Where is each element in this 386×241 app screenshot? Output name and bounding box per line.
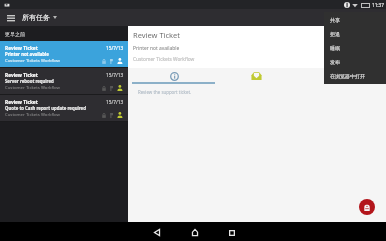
staticText: Review Ticket	[5, 45, 38, 52]
staticText: Customer Tickets Workflow	[5, 57, 60, 63]
button[interactable]: Details	[128, 68, 220, 84]
button[interactable]: Messages	[220, 68, 293, 84]
staticText: Printer not available	[5, 51, 49, 57]
staticText: Review the support ticket.	[138, 89, 192, 95]
staticText: 所有任务	[22, 13, 50, 22]
button[interactable]: Open navigation drawer	[0, 9, 22, 26]
button[interactable]: Back	[137, 222, 176, 241]
staticText: Review Ticket	[5, 72, 38, 79]
staticText: Server reboot required	[5, 78, 54, 84]
button[interactable]: New task	[359, 199, 375, 215]
staticText: 11:37	[372, 2, 384, 8]
button[interactable]: Review Ticket	[0, 95, 128, 122]
staticText: 拒退	[330, 31, 340, 37]
staticText: Review Ticket	[5, 99, 38, 106]
button[interactable]: Review Ticket	[0, 41, 128, 68]
staticText: 15/7/13	[106, 45, 124, 52]
button[interactable]: Recent apps	[213, 222, 250, 241]
staticText: 共享	[330, 17, 340, 23]
button[interactable]: 拒退	[324, 27, 386, 41]
button[interactable]: 发布	[324, 55, 386, 69]
staticText: 更早之前	[5, 31, 25, 37]
staticText: Customer Tickets Workflow	[133, 56, 195, 63]
staticText: 睡眠	[330, 45, 340, 51]
button[interactable]: Home	[176, 222, 213, 241]
staticText: Customer Tickets Workflow	[5, 111, 60, 117]
button[interactable]: 共享	[324, 13, 386, 27]
staticText: 在浏览器中打开	[330, 73, 365, 79]
staticText: 15/7/13	[106, 99, 124, 106]
button[interactable]: 在浏览器中打开	[324, 69, 386, 83]
button[interactable]: 所有任务	[22, 9, 57, 26]
button[interactable]: 睡眠	[324, 41, 386, 55]
staticText: Review Ticket	[133, 30, 181, 40]
staticText: Quote to Cash report update required	[5, 105, 86, 111]
staticText: 发布	[330, 59, 340, 65]
staticText: Customer Tickets Workflow	[5, 84, 60, 90]
staticText: Printer not available	[133, 45, 180, 52]
staticText: 15/7/13	[106, 72, 124, 79]
button[interactable]: Review Ticket	[0, 68, 128, 95]
